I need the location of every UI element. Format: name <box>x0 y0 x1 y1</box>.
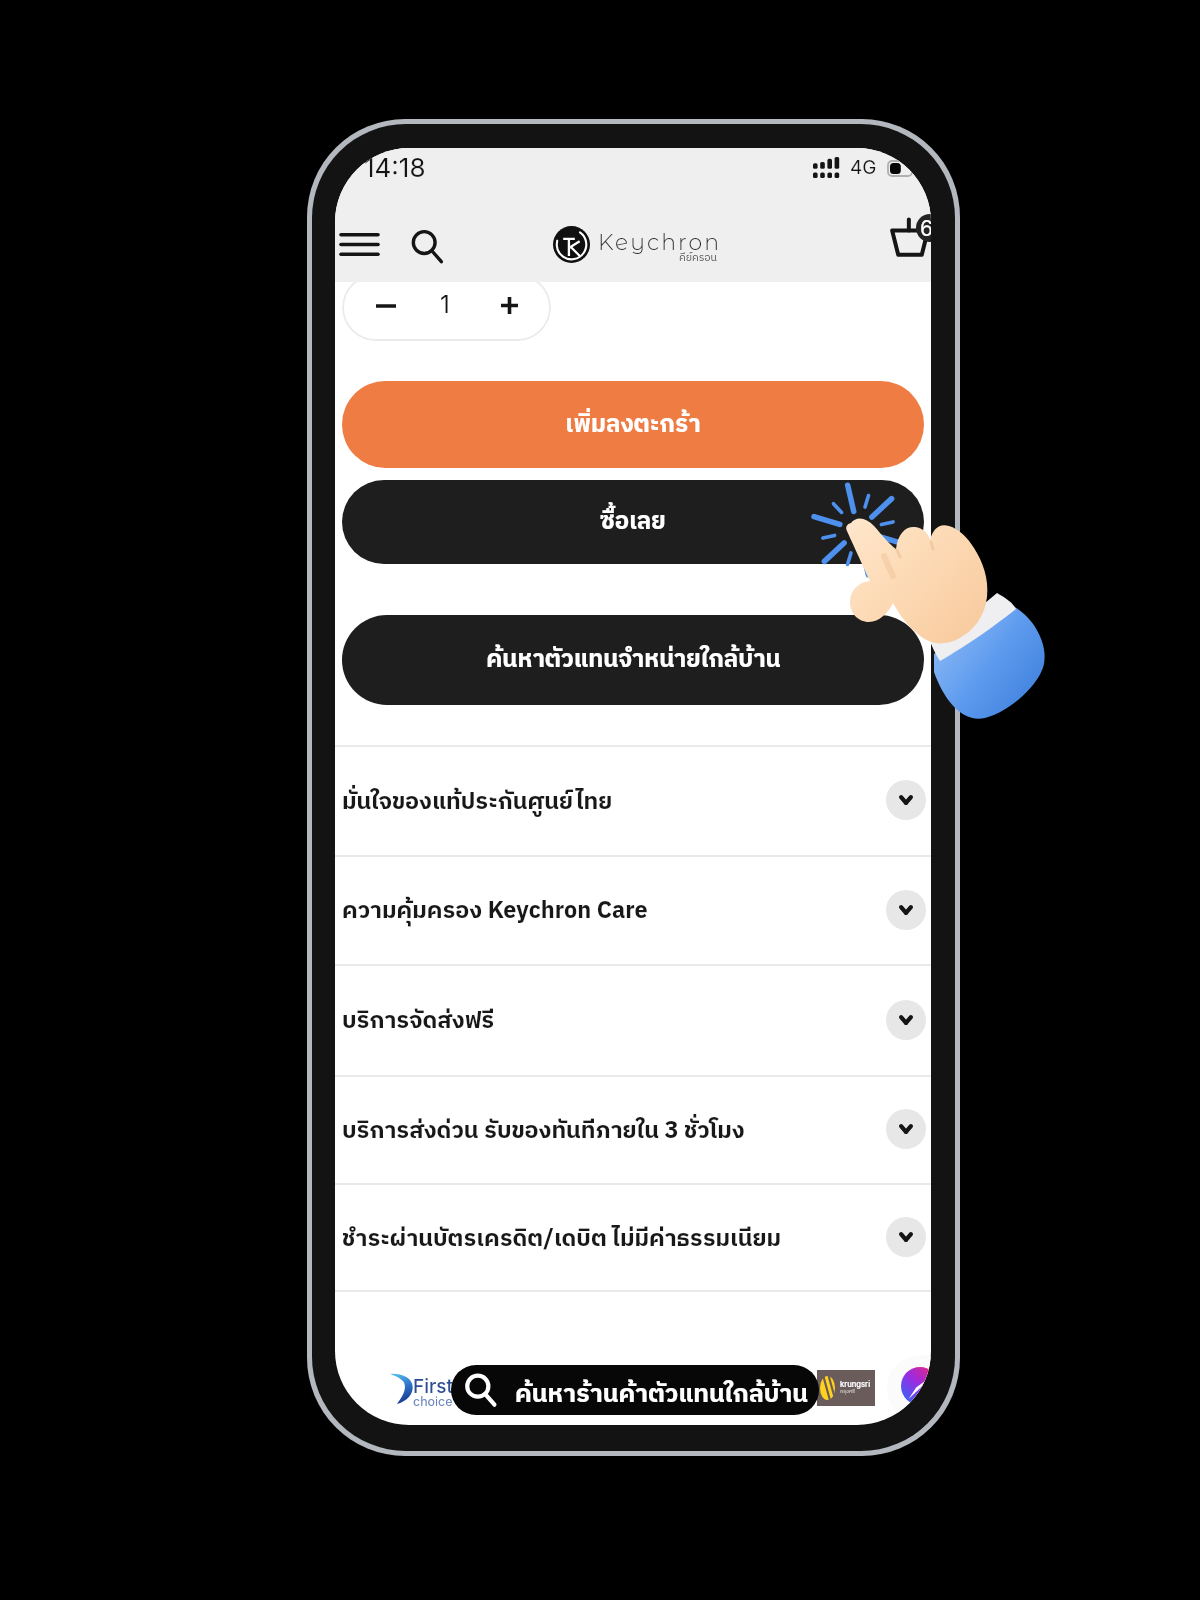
staticText: 1 <box>440 290 450 319</box>
staticText: กรุงศรี <box>840 1387 855 1396</box>
button[interactable]: Search <box>397 220 451 274</box>
button[interactable]: Cart <box>884 210 931 262</box>
staticText: ความคุ้มครอง Keychron Care <box>342 892 886 931</box>
staticText: คีย์ครอน <box>679 249 717 266</box>
staticText: บริการส่งด่วน รับของทันทีภายใน 3 ชั่วโมง <box>342 1112 886 1151</box>
button[interactable]: ชำระผ่านบัตรเครดิต/เดบิต ไม่มีค่าธรรมเนี… <box>335 1183 931 1291</box>
button[interactable]: 1 <box>342 274 551 341</box>
button[interactable]: บริการจัดส่งฟรี <box>335 964 931 1075</box>
staticText: 4G <box>850 156 877 179</box>
staticText: First <box>413 1375 454 1398</box>
staticText: ชำระผ่านบัตรเครดิต/เดบิต ไม่มีค่าธรรมเนี… <box>342 1220 886 1259</box>
staticText: 14:18 <box>364 152 426 183</box>
button[interactable]: เพิ่มลงตะกร้า <box>342 381 924 468</box>
staticText: มั่นใจของแท้ประกันศูนย์ไทย <box>342 783 886 822</box>
button[interactable]: ซื้อเลย <box>342 480 924 564</box>
staticText: ค้นหาตัวแทนจำหน่ายใกล้บ้าน <box>486 640 781 680</box>
button[interactable]: Menu <box>335 220 385 268</box>
staticText: 6 <box>920 216 931 241</box>
button[interactable]: บริการส่งด่วน รับของทันทีภายใน 3 ชั่วโมง <box>335 1075 931 1183</box>
button[interactable]: ค้นหาร้านค้าตัวแทนใกล้บ้าน <box>451 1365 819 1415</box>
staticText: krungsri <box>840 1380 871 1389</box>
button[interactable]: ความคุ้มครอง Keychron Care <box>335 855 931 964</box>
staticText: บริการจัดส่งฟรี <box>342 1002 886 1041</box>
staticText: ซื้อเลย <box>600 502 666 542</box>
staticText: choice <box>413 1394 453 1409</box>
staticText: Keychron <box>598 229 722 256</box>
staticText: ค้นหาร้านค้าตัวแทนใกล้บ้าน <box>515 1374 808 1415</box>
button[interactable]: ค้นหาตัวแทนจำหน่ายใกล้บ้าน <box>342 615 924 705</box>
button[interactable]: มั่นใจของแท้ประกันศูนย์ไทย <box>335 745 931 855</box>
staticText: เพิ่มลงตะกร้า <box>565 405 701 445</box>
